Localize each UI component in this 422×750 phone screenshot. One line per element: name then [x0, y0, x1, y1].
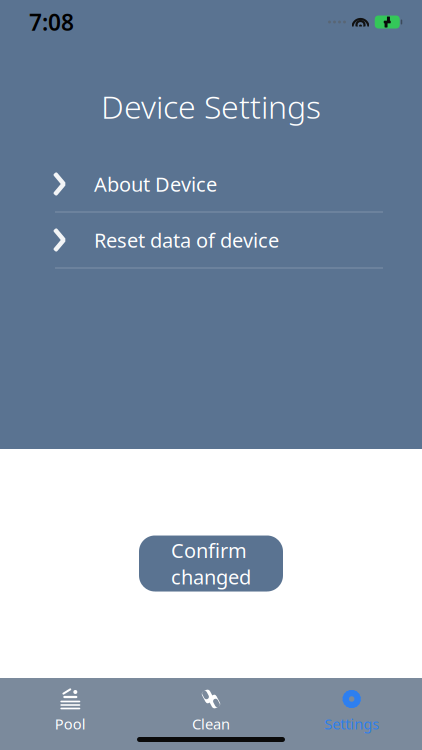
button[interactable]: Settings — [281, 682, 422, 735]
staticText: Reset data of device — [94, 227, 279, 253]
button[interactable]: Reset data of device — [0, 212, 422, 268]
staticText: Device Settings — [101, 85, 321, 127]
staticText: 7:08 — [29, 7, 74, 37]
staticText: Confirm changed — [171, 537, 251, 590]
button[interactable]: About Device — [0, 156, 422, 212]
button[interactable]: Confirm changed — [139, 535, 283, 591]
button[interactable]: Clean — [141, 682, 281, 735]
button[interactable]: Pool — [0, 682, 141, 735]
staticText: Pool — [55, 714, 86, 733]
staticText: About Device — [94, 171, 217, 197]
staticText: Clean — [192, 714, 230, 733]
staticText: Settings — [324, 714, 379, 733]
